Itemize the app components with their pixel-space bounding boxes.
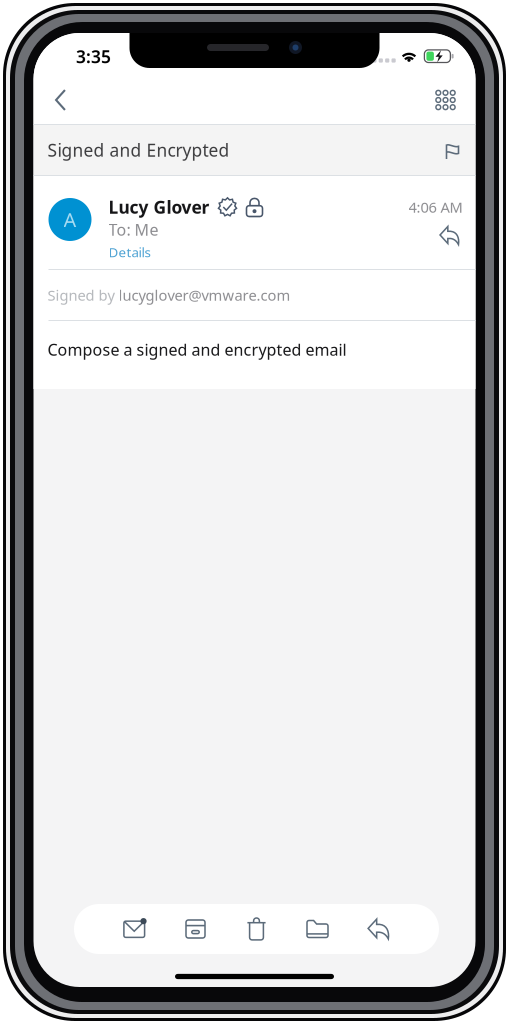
- button[interactable]: Reply: [436, 224, 462, 247]
- staticText: lucyglover@vmware.com: [118, 285, 290, 305]
- staticText: Details: [108, 243, 150, 261]
- button[interactable]: Delete: [226, 904, 287, 954]
- button[interactable]: Move to folder: [287, 904, 348, 954]
- staticText: Lucy Glover: [108, 195, 209, 218]
- staticText: Signed by: [47, 285, 118, 305]
- button[interactable]: Apps: [422, 76, 468, 124]
- button[interactable]: Mark as unread: [104, 904, 165, 954]
- button[interactable]: Flag: [435, 131, 469, 171]
- staticText: A: [63, 206, 76, 233]
- button[interactable]: Details: [108, 241, 150, 263]
- button[interactable]: Reply: [348, 904, 409, 954]
- staticText: 4:06 AM: [408, 197, 462, 217]
- staticText: Compose a signed and encrypted email: [47, 339, 346, 360]
- staticText: To: Me: [108, 219, 158, 240]
- button[interactable]: Archive: [165, 904, 226, 954]
- staticText: 3:35: [76, 45, 111, 68]
- button[interactable]: Back: [38, 76, 82, 124]
- staticText: Signed and Encrypted: [47, 138, 229, 161]
